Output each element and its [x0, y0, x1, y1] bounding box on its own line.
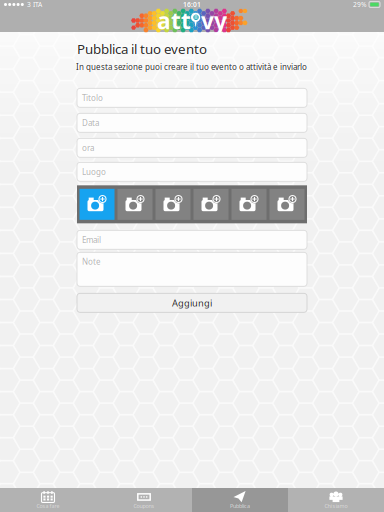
staticText: att — [157, 5, 191, 35]
button[interactable]: Add photo — [193, 189, 228, 220]
staticText: Email — [82, 234, 101, 245]
staticText: Cosa fare — [36, 502, 59, 510]
staticText: Titolo — [82, 92, 103, 103]
staticText: Chi siamo — [324, 502, 347, 510]
button[interactable]: Note — [77, 252, 307, 286]
button[interactable]: Add photo — [269, 189, 304, 220]
staticText: In questa sezione puoi creare il tuo eve… — [76, 62, 307, 72]
staticText: vy — [201, 5, 227, 35]
staticText: Note — [82, 256, 101, 267]
staticText: Data — [82, 117, 99, 128]
button[interactable]: Add photo — [155, 189, 190, 220]
button[interactable]: Add photo — [79, 189, 114, 220]
staticText: Coupons — [133, 502, 154, 510]
button[interactable]: Email — [77, 230, 307, 249]
button[interactable]: Titolo — [77, 88, 307, 107]
button[interactable]: Aggiungi — [77, 293, 307, 312]
staticText: Pubblica il tuo evento — [77, 40, 207, 58]
staticText: ora — [82, 142, 94, 153]
staticText: Pubblica — [230, 502, 250, 510]
button[interactable]: Luogo — [77, 162, 307, 181]
button[interactable]: Coupons — [96, 488, 192, 512]
button[interactable]: Data — [77, 113, 307, 132]
staticText: Luogo — [82, 166, 106, 177]
staticText: Aggiungi — [172, 297, 212, 309]
button[interactable]: Chi siamo — [288, 488, 384, 512]
staticText: 3 ITA — [25, 0, 42, 9]
button[interactable]: Pubblica — [192, 488, 288, 512]
button[interactable]: ora — [77, 138, 307, 157]
button[interactable]: Add photo — [117, 189, 152, 220]
button[interactable]: Add photo — [231, 189, 266, 220]
staticText: 16:01 — [183, 0, 201, 9]
button[interactable]: Cosa fare — [0, 488, 96, 512]
staticText: 29% — [353, 0, 367, 9]
